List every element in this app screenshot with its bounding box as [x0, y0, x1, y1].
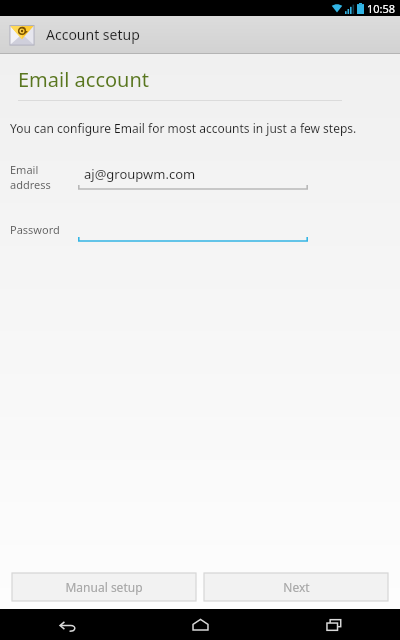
- staticText: 10:58: [367, 1, 396, 16]
- staticText: Next: [283, 579, 310, 595]
- button[interactable]: Home: [134, 609, 267, 640]
- button[interactable]: Password: [0, 214, 400, 244]
- button[interactable]: Next: [204, 573, 388, 601]
- staticText: Email address: [10, 162, 78, 192]
- staticText: Manual setup: [65, 579, 143, 595]
- staticText: aj@groupwm.com: [84, 165, 196, 183]
- button[interactable]: Manual setup: [12, 573, 196, 601]
- button[interactable]: Back: [0, 609, 134, 640]
- button[interactable]: Recent apps: [267, 609, 400, 640]
- button[interactable]: Email address: [0, 162, 400, 192]
- staticText: Password: [10, 222, 60, 237]
- staticText: Email account: [18, 66, 150, 93]
- staticText: Account setup: [46, 25, 140, 44]
- staticText: You can configure Email for most account…: [10, 120, 357, 136]
